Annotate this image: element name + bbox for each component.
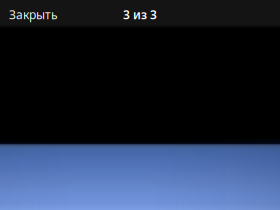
button[interactable]: Закрыть xyxy=(0,0,66,25)
staticText: 3 из 3 xyxy=(123,6,157,22)
staticText: Закрыть xyxy=(9,6,58,22)
